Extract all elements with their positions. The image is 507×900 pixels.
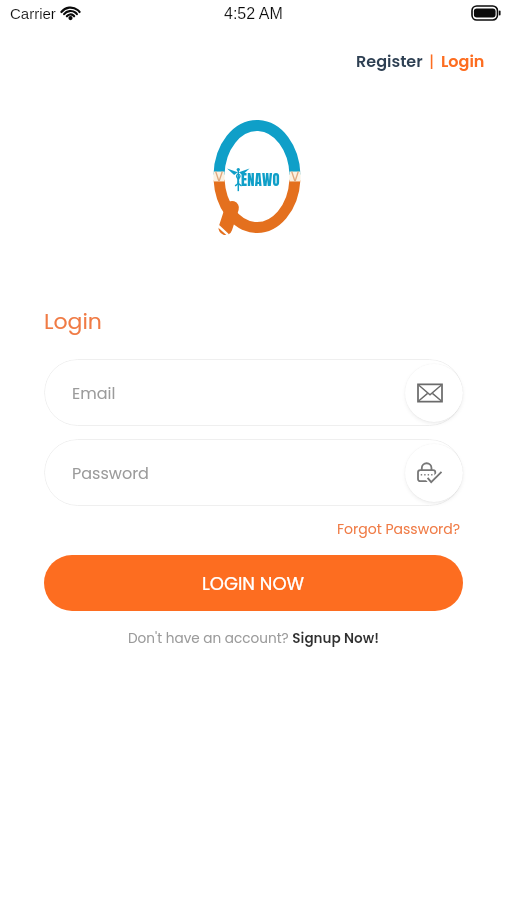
button[interactable]: Password [44,439,463,506]
staticText: 4:52 AM [224,5,283,23]
button[interactable]: LOGIN NOW [44,555,463,611]
staticText: Carrier [10,5,56,22]
staticText: Email [72,382,116,404]
other: Email [418,381,442,405]
staticText: Password [72,462,149,484]
button[interactable]: Register [354,46,425,76]
button[interactable]: Login [439,46,487,76]
staticText: LOGIN NOW [202,571,305,596]
staticText: Register [356,50,423,72]
staticText: Login [441,50,485,72]
staticText: Login [44,306,102,337]
button[interactable]: Forgot Password? [335,517,463,541]
button[interactable]: Don't have an account? Signup Now! [126,627,381,650]
staticText: ENAWO [241,169,280,191]
staticText: Forgot Password? [337,519,461,539]
staticText: | [425,50,439,72]
staticText: Don't have an account? Signup Now! [128,629,379,648]
other: Password [418,461,442,485]
button[interactable]: Email [44,359,463,426]
